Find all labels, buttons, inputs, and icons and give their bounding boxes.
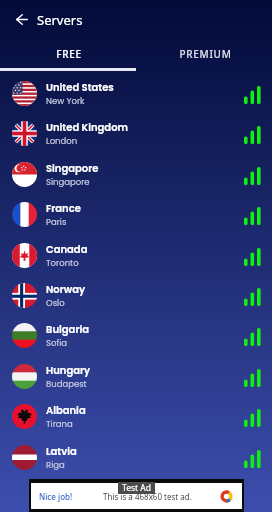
button[interactable]: Albania (0, 396, 272, 436)
staticText: New York (46, 95, 85, 107)
staticText: FREE (56, 47, 82, 61)
staticText: Servers (37, 11, 83, 29)
staticText: PREMIUM (179, 47, 232, 61)
staticText: Albania (46, 403, 86, 417)
button[interactable]: United States (0, 73, 272, 113)
button[interactable]: France (0, 194, 272, 234)
staticText: Toronto (46, 257, 79, 269)
staticText: Budapest (46, 378, 87, 390)
staticText: Norway (46, 282, 86, 296)
staticText: Riga (46, 459, 65, 471)
button[interactable]: Nice job! (31, 483, 242, 509)
staticText: Sofia (46, 337, 68, 349)
button[interactable]: FREE (1, 37, 137, 70)
staticText: Canada (46, 242, 88, 256)
button[interactable]: Hungary (0, 356, 272, 396)
staticText: Test Ad (122, 482, 151, 494)
staticText: Paris (46, 216, 67, 228)
staticText: United Kingdom (46, 120, 129, 134)
staticText: Singapore (46, 161, 99, 175)
staticText: Latvia (46, 444, 77, 458)
button[interactable]: Latvia (0, 437, 272, 477)
staticText: Hungary (46, 363, 91, 377)
button[interactable]: Back (7, 4, 37, 34)
staticText: France (46, 201, 81, 215)
staticText: Oslo (46, 297, 65, 309)
button[interactable]: Singapore (0, 154, 272, 194)
button[interactable]: United Kingdom (0, 113, 272, 153)
staticText: This is a 468x60 test ad. (103, 491, 192, 502)
staticText: Bulgaria (46, 322, 89, 336)
button[interactable]: PREMIUM (137, 37, 272, 70)
button[interactable]: Norway (0, 275, 272, 315)
button[interactable]: Bulgaria (0, 315, 272, 355)
staticText: Tirana (46, 418, 73, 430)
staticText: Nice job! (39, 491, 73, 502)
staticText: Singapore (46, 176, 90, 188)
button[interactable]: Canada (0, 235, 272, 275)
staticText: London (46, 135, 78, 147)
staticText: United States (46, 80, 114, 94)
